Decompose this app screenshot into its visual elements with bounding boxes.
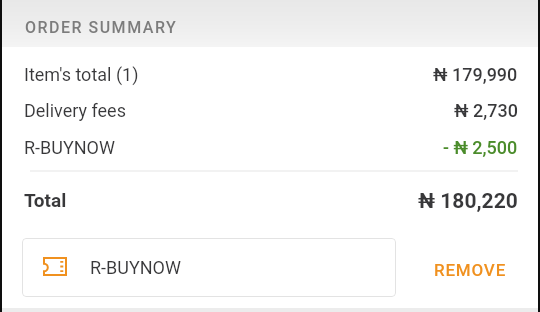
button[interactable]: REMOVE	[428, 254, 513, 286]
other: Coupon	[43, 257, 67, 276]
staticText: Delivery fees	[24, 100, 126, 121]
staticText: ₦ 180,220	[418, 189, 518, 214]
staticText: ORDER SUMMARY	[25, 18, 178, 37]
staticText: ₦ 2,730	[454, 100, 518, 121]
button[interactable]: Coupon	[22, 238, 396, 297]
staticText: R-BUYNOW	[24, 137, 115, 158]
staticText: Item's total (1)	[24, 64, 139, 85]
staticText: - ₦ 2,500	[443, 137, 518, 158]
staticText: Total	[24, 189, 67, 211]
staticText: ₦ 179,990	[433, 64, 518, 85]
staticText: REMOVE	[434, 260, 507, 280]
staticText: R-BUYNOW	[90, 257, 181, 278]
